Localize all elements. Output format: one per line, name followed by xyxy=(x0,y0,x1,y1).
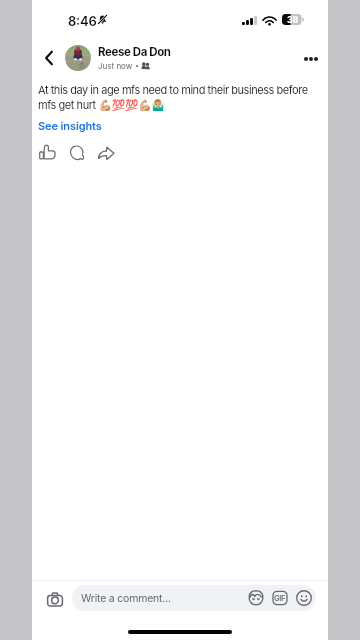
staticText: GIF xyxy=(274,594,286,603)
button[interactable]: Profile photo xyxy=(65,45,91,71)
button[interactable]: Back xyxy=(34,43,64,73)
button[interactable]: Reese Da Don xyxy=(98,45,171,71)
button[interactable]: More options xyxy=(296,44,326,74)
button[interactable]: Like xyxy=(33,138,62,167)
button[interactable]: See insights xyxy=(38,119,102,132)
button[interactable]: Write a comment... xyxy=(72,585,316,611)
button[interactable]: Camera xyxy=(40,584,70,614)
button[interactable]: Emoji xyxy=(296,590,312,606)
button[interactable]: Share xyxy=(91,138,120,167)
staticText: Reese Da Don xyxy=(98,45,171,59)
staticText: Write a comment... xyxy=(81,592,171,605)
button[interactable]: GIF xyxy=(272,590,288,606)
staticText: See insights xyxy=(38,119,102,132)
button[interactable]: Comment xyxy=(62,138,91,167)
button[interactable]: Stickers xyxy=(248,590,264,606)
staticText: 38 xyxy=(287,14,298,25)
staticText: Just now xyxy=(98,61,133,71)
staticText: 8:46 xyxy=(68,13,97,29)
staticText: At this day in age mfs need to mind thei… xyxy=(38,83,316,111)
